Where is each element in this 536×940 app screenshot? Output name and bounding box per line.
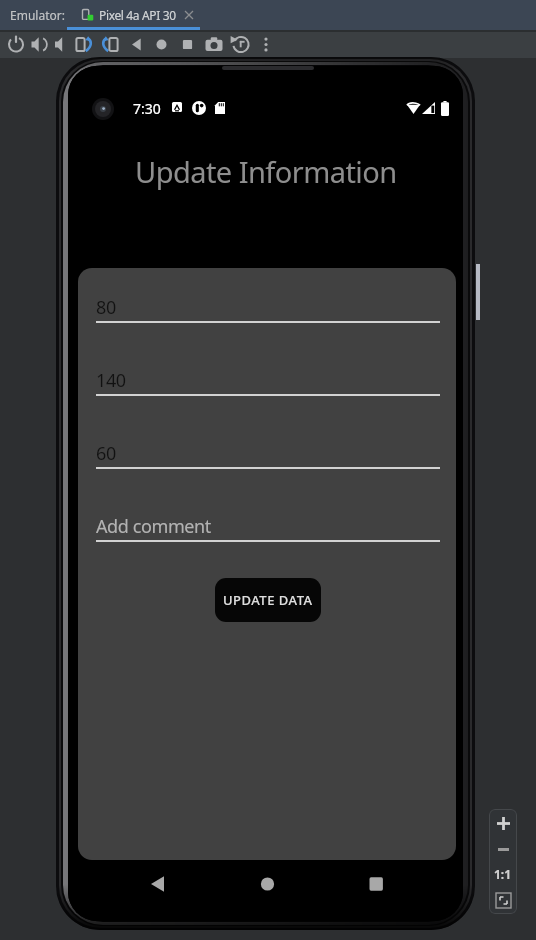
button[interactable]: 80: [96, 284, 440, 323]
staticText: 1:1: [494, 866, 512, 882]
button[interactable]: Screenshot: [205, 31, 227, 58]
button[interactable]: Pixel 4a API 30: [67, 0, 200, 30]
button[interactable]: Zoom out: [492, 838, 514, 860]
staticText: 80: [96, 295, 116, 320]
button[interactable]: Actual size: [492, 863, 514, 885]
button[interactable]: Rotate left: [74, 31, 96, 58]
button[interactable]: Overview: [178, 31, 200, 58]
button[interactable]: History: [231, 31, 253, 58]
staticText: 60: [96, 441, 116, 466]
staticText: Update Information: [135, 152, 397, 191]
button[interactable]: Back: [130, 860, 178, 908]
staticText: UPDATE DATA: [223, 591, 313, 609]
button[interactable]: Rotate right: [100, 31, 122, 58]
button[interactable]: Home: [152, 31, 174, 58]
staticText: Pixel 4a API 30: [99, 7, 176, 23]
button[interactable]: Home: [243, 860, 291, 908]
button[interactable]: Volume up: [28, 31, 50, 58]
button[interactable]: More: [257, 31, 279, 58]
button[interactable]: Volume down: [51, 31, 73, 58]
button[interactable]: Add comment: [96, 503, 440, 542]
button[interactable]: Zoom in: [492, 812, 514, 834]
staticText: Emulator:: [10, 7, 65, 23]
staticText: 140: [96, 368, 126, 393]
button[interactable]: UPDATE DATA: [215, 578, 321, 622]
staticText: 7:30: [133, 99, 161, 118]
button[interactable]: Power: [5, 31, 27, 58]
button[interactable]: Back: [127, 31, 149, 58]
button[interactable]: 60: [96, 430, 440, 469]
button[interactable]: 140: [96, 357, 440, 396]
button[interactable]: Fit to screen: [492, 889, 514, 911]
staticText: Add comment: [96, 514, 211, 539]
button[interactable]: Recent apps: [352, 860, 400, 908]
